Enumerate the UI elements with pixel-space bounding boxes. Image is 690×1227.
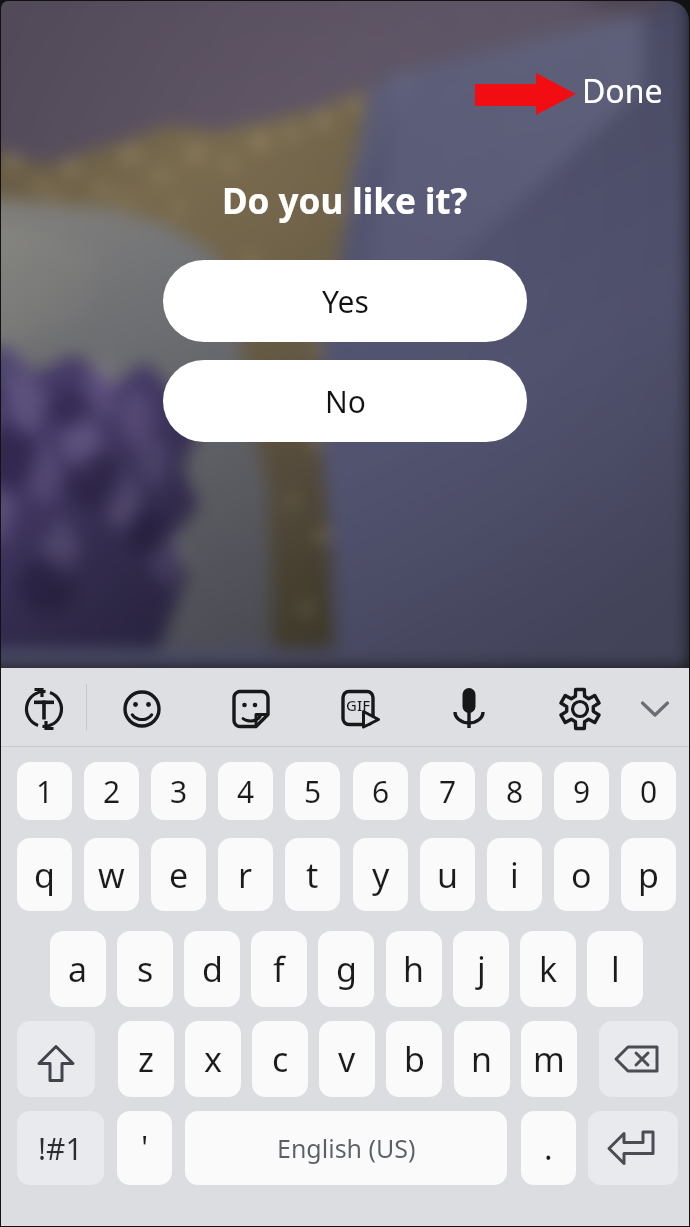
staticText: d (202, 946, 223, 992)
button[interactable]: q (17, 838, 72, 911)
button[interactable]: 7 (420, 762, 475, 820)
button[interactable]: w (84, 838, 139, 911)
button[interactable]: e (151, 838, 206, 911)
button[interactable]: !#1 (17, 1111, 104, 1185)
button[interactable]: Keyboard settings (551, 680, 609, 738)
button[interactable]: 5 (285, 762, 340, 820)
staticText: b (404, 1036, 425, 1082)
staticText: s (137, 946, 154, 992)
staticText: k (539, 946, 558, 992)
button[interactable]: f (251, 931, 307, 1007)
button[interactable]: 4 (218, 762, 273, 820)
button[interactable]: Enter (588, 1111, 678, 1185)
staticText: v (338, 1036, 356, 1082)
button[interactable]: h (386, 931, 442, 1007)
button[interactable]: Hide keyboard (626, 680, 684, 738)
button[interactable]: Backspace (599, 1021, 678, 1097)
staticText: q (34, 852, 55, 898)
staticText: GIF (346, 695, 371, 715)
button[interactable]: ' (117, 1111, 172, 1185)
staticText: c (272, 1036, 289, 1082)
button[interactable]: o (554, 838, 609, 911)
button[interactable]: Yes (163, 260, 527, 342)
staticText: English (US) (277, 1131, 416, 1165)
button[interactable]: y (353, 838, 408, 911)
button[interactable]: 3 (151, 762, 206, 820)
staticText: !#1 (38, 1128, 83, 1169)
button[interactable]: u (420, 838, 475, 911)
staticText: Done (582, 69, 663, 113)
staticText: 1 (36, 771, 54, 812)
staticText: 9 (573, 771, 591, 812)
staticText: j (477, 946, 486, 992)
button[interactable]: No (163, 360, 527, 442)
button[interactable]: n (454, 1021, 510, 1097)
button[interactable]: r (218, 838, 273, 911)
staticText: 2 (103, 771, 121, 812)
staticText: z (138, 1036, 154, 1082)
button[interactable]: c (252, 1021, 308, 1097)
staticText: 4 (237, 771, 255, 812)
staticText: u (437, 852, 459, 898)
button[interactable]: l (587, 931, 643, 1007)
button[interactable]: Voice input (440, 680, 498, 738)
staticText: 3 (170, 771, 188, 812)
button[interactable]: Stickers (222, 680, 280, 738)
button[interactable]: 9 (554, 762, 609, 820)
button[interactable]: x (185, 1021, 241, 1097)
staticText: m (533, 1036, 565, 1082)
button[interactable]: i (487, 838, 542, 911)
button[interactable]: Animated GIF (331, 680, 389, 738)
button[interactable]: English (US) (185, 1111, 507, 1185)
staticText: p (638, 852, 659, 898)
staticText: l (611, 946, 620, 992)
staticText: e (169, 852, 189, 898)
button[interactable]: p (621, 838, 676, 911)
button[interactable]: m (521, 1021, 577, 1097)
button[interactable]: d (184, 931, 240, 1007)
button[interactable]: s (117, 931, 173, 1007)
button[interactable]: 1 (17, 762, 72, 820)
staticText: 6 (372, 771, 390, 812)
staticText: i (510, 852, 519, 898)
staticText: ' (141, 1126, 149, 1170)
staticText: n (471, 1036, 493, 1082)
button[interactable]: z (118, 1021, 174, 1097)
staticText: t (306, 852, 319, 898)
staticText: 8 (506, 771, 524, 812)
button[interactable]: 0 (621, 762, 676, 820)
staticText: 0 (640, 771, 658, 812)
staticText: g (336, 946, 357, 992)
button[interactable]: 2 (84, 762, 139, 820)
button[interactable]: 6 (353, 762, 408, 820)
staticText: Yes (322, 281, 369, 322)
staticText: h (403, 946, 425, 992)
staticText: w (98, 852, 125, 898)
button[interactable]: 8 (487, 762, 542, 820)
staticText: 5 (304, 771, 322, 812)
staticText: x (204, 1036, 222, 1082)
staticText: a (68, 946, 88, 992)
button[interactable]: Shift (17, 1021, 95, 1097)
button[interactable]: g (318, 931, 374, 1007)
staticText: r (238, 852, 253, 898)
staticText: 7 (439, 771, 457, 812)
button[interactable]: b (386, 1021, 442, 1097)
button[interactable]: . (521, 1111, 576, 1185)
staticText: Do you like it? (222, 177, 468, 225)
staticText: y (372, 852, 390, 898)
button[interactable]: a (50, 931, 106, 1007)
button[interactable]: Done (570, 63, 675, 119)
staticText: . (544, 1126, 553, 1170)
button[interactable]: j (453, 931, 509, 1007)
staticText: f (273, 946, 285, 992)
staticText: o (571, 852, 592, 898)
button[interactable]: Translate (15, 680, 73, 738)
button[interactable]: t (285, 838, 340, 911)
staticText: No (325, 381, 366, 422)
button[interactable]: Emoji (113, 680, 171, 738)
button[interactable]: v (319, 1021, 375, 1097)
button[interactable]: k (520, 931, 576, 1007)
